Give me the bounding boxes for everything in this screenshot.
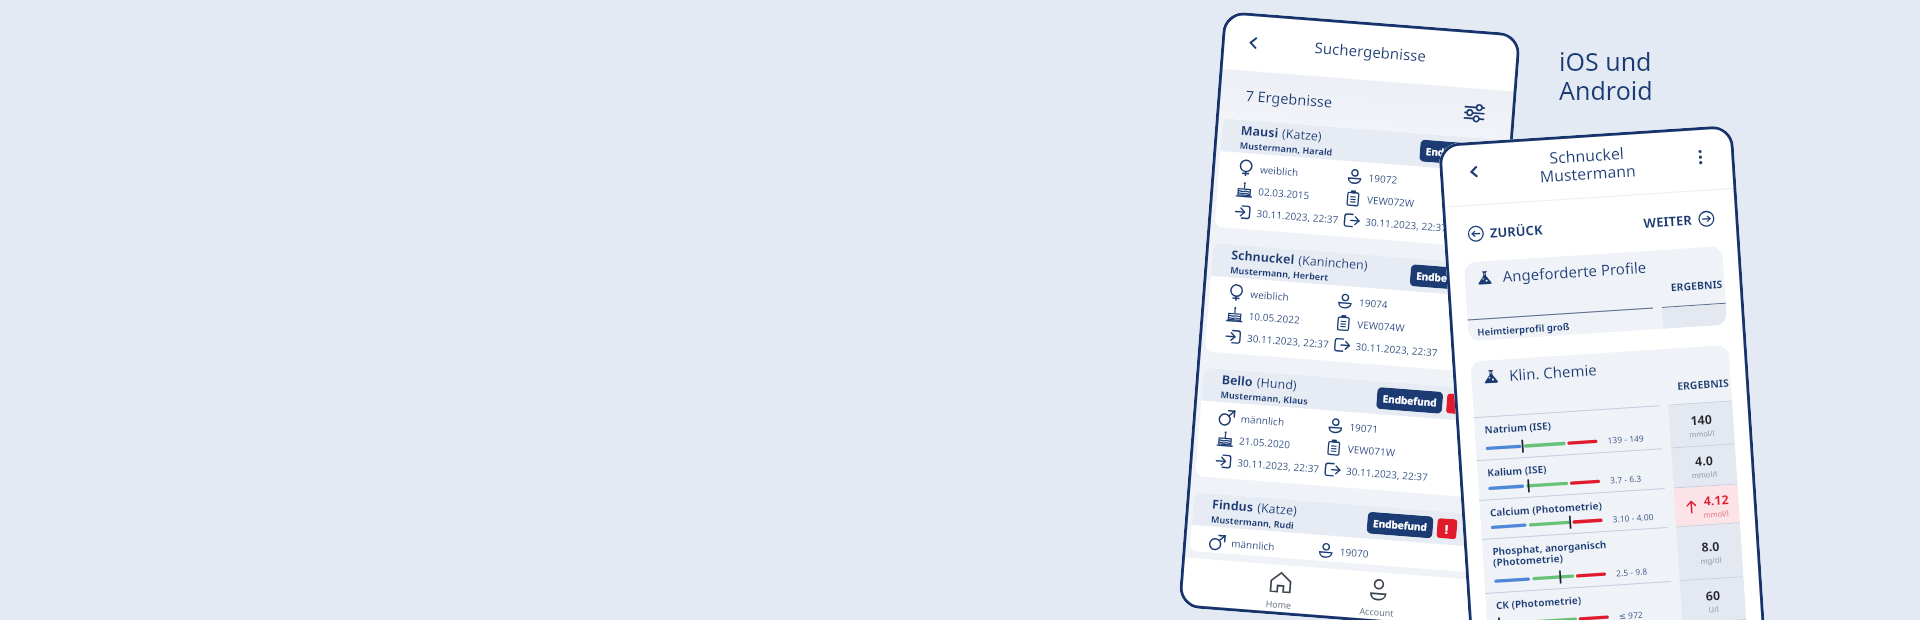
staticText: ZURÜCK — [1489, 220, 1543, 242]
button[interactable]: Mausi — [1214, 118, 1506, 249]
staticText: ! — [1454, 396, 1459, 412]
button[interactable]: Home — [1253, 563, 1307, 617]
staticText: VEW071W — [1347, 442, 1396, 459]
staticText: 30.11.2023, 22:37 — [1256, 206, 1339, 226]
staticText: Mustermann, Rudi — [1211, 512, 1295, 531]
staticText: Endbefund — [1382, 391, 1437, 409]
button[interactable]: More options — [1685, 142, 1715, 172]
staticText: VEW074W — [1357, 317, 1406, 335]
staticText: Klin. Chemie — [1508, 359, 1597, 385]
staticText: (Hund) — [1253, 373, 1298, 394]
staticText: 19074 — [1358, 295, 1388, 311]
staticText: 139 - 149 — [1607, 432, 1645, 447]
staticText: Natrium (ISE) — [1484, 418, 1552, 437]
button[interactable]: Filter — [1460, 98, 1488, 126]
staticText: 4.12 — [1703, 491, 1729, 510]
button[interactable]: ZURÜCK — [1465, 218, 1545, 245]
staticText: 19070 — [1339, 544, 1369, 561]
button[interactable]: Schnuckel — [1205, 243, 1496, 373]
button[interactable]: WEITER — [1641, 207, 1717, 234]
staticText: Suchergebnisse — [1267, 33, 1474, 69]
staticText: U/l — [1708, 604, 1720, 614]
staticText: (Katze) — [1253, 499, 1298, 519]
staticText: mmol/l — [1689, 428, 1715, 439]
staticText: 2.5 - 9.8 — [1616, 565, 1648, 579]
staticText: (Kaninchen) — [1294, 251, 1369, 274]
staticText: Mustermann, Klaus — [1220, 388, 1309, 407]
button[interactable]: Warning — [1446, 393, 1467, 415]
staticText: 30.11.2023, 22:37 — [1237, 455, 1320, 476]
button[interactable]: Endbefund — [1419, 139, 1486, 166]
staticText: ≤ 972 — [1618, 609, 1643, 620]
staticText: männlich — [1231, 536, 1276, 553]
staticText: Angeforderte Profile — [1502, 257, 1647, 286]
button[interactable]: Back — [1459, 157, 1489, 187]
staticText: 19071 — [1349, 420, 1379, 436]
staticText: Endbefund — [1425, 144, 1480, 162]
staticText: 21.05.2020 — [1239, 433, 1291, 451]
staticText: Account — [1359, 604, 1395, 619]
button[interactable]: Account — [1351, 571, 1404, 620]
staticText: weiblich — [1259, 162, 1299, 179]
staticText: 30.11.2023, 22:37 — [1246, 331, 1329, 351]
button[interactable]: Endbefund — [1409, 264, 1477, 291]
staticText: (Katze) — [1278, 125, 1322, 145]
staticText: 30.11.2023, 22:37 — [1355, 339, 1438, 359]
staticText: Mausi — [1240, 122, 1279, 142]
staticText: ERGEBNIS — [1677, 376, 1729, 393]
staticText: Kalium (ISE) — [1487, 462, 1548, 479]
staticText: mg/dl — [1700, 555, 1722, 566]
staticText: 4.0 — [1694, 452, 1714, 470]
button[interactable]: Endbefund — [1366, 511, 1434, 538]
staticText: 140 — [1690, 411, 1713, 429]
staticText: weiblich — [1250, 287, 1290, 304]
staticText: 19072 — [1368, 171, 1398, 187]
staticText: Phosphat, anorganisch (Photometrie) — [1492, 537, 1608, 569]
staticText: 30.11.2023, 22:37 — [1365, 214, 1447, 235]
staticText: ERGEBNIS — [1670, 277, 1723, 294]
staticText: Bello — [1221, 371, 1254, 390]
staticText: Endbefund — [1373, 516, 1427, 534]
staticText: mmol/l — [1703, 508, 1730, 520]
staticText: 30.11.2023, 22:37 — [1346, 464, 1428, 484]
staticText: 60 — [1705, 587, 1721, 605]
staticText: Schnuckel Mustermann — [1486, 138, 1688, 191]
staticText: 3.7 - 6.3 — [1610, 472, 1642, 486]
button[interactable]: Warning — [1436, 518, 1458, 539]
staticText: 3.10 - 4.00 — [1612, 511, 1654, 525]
button[interactable]: Findus — [1189, 492, 1477, 573]
staticText: Endbefund — [1416, 269, 1471, 287]
staticText: 10.05.2022 — [1248, 309, 1301, 327]
staticText: Home — [1265, 597, 1292, 611]
staticText: WEITER — [1643, 211, 1693, 232]
button[interactable]: Back — [1237, 26, 1269, 58]
staticText: Findus — [1211, 496, 1255, 516]
staticText: männlich — [1240, 411, 1285, 429]
staticText: Calcium (Photometrie) — [1489, 498, 1603, 519]
staticText: iOS und Android — [1559, 44, 1653, 107]
staticText: Mustermann, Harald — [1239, 139, 1333, 158]
staticText: Heimtierprofil groß — [1477, 320, 1570, 339]
staticText: Mustermann, Herbert — [1230, 263, 1329, 283]
staticText: 02.03.2015 — [1258, 184, 1311, 202]
staticText: 8.0 — [1701, 538, 1720, 556]
staticText: mmol/l — [1692, 469, 1718, 480]
button[interactable]: Bello — [1195, 367, 1487, 498]
staticText: ! — [1444, 520, 1449, 537]
staticText: VEW072W — [1366, 192, 1415, 210]
button[interactable]: Endbefund — [1376, 387, 1443, 414]
staticText: Schnuckel — [1231, 246, 1296, 268]
staticText: CK (Photometrie) — [1495, 593, 1582, 612]
staticText: 7 Ergebnisse — [1245, 85, 1333, 111]
